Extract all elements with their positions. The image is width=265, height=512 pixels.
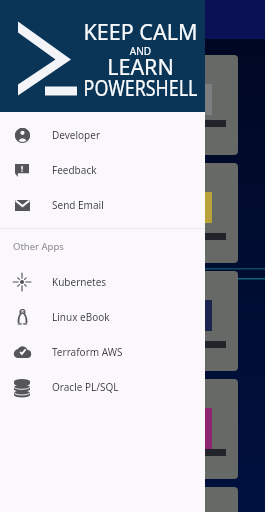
staticText: Linux eBook	[52, 310, 110, 324]
staticText: Send Email	[52, 198, 104, 212]
button[interactable]: Send Email	[0, 187, 205, 222]
staticText: Other Apps	[13, 240, 64, 253]
staticText: Oracle PL/SQL	[52, 380, 119, 394]
button[interactable]: Linux eBook	[0, 299, 205, 334]
button[interactable]	[150, 55, 238, 155]
button[interactable]	[150, 163, 238, 263]
button[interactable]: Kubernetes	[0, 264, 205, 299]
button[interactable]	[150, 487, 238, 512]
staticText: Terraform AWS	[52, 345, 123, 359]
button[interactable]: Terraform AWS	[0, 334, 205, 369]
button[interactable]: Developer	[0, 117, 205, 152]
staticText: Developer	[52, 128, 101, 142]
staticText: POWERSHELL	[55, 73, 225, 102]
staticText: AND	[38, 44, 243, 58]
button[interactable]: Oracle PL/SQL	[0, 369, 205, 404]
staticText: KEEP CALM	[38, 17, 243, 46]
staticText: Feedback	[52, 163, 97, 177]
staticText: LEARN	[38, 52, 243, 81]
button[interactable]	[150, 271, 238, 371]
staticText: Kubernetes	[52, 275, 107, 289]
button[interactable]	[150, 379, 238, 479]
button[interactable]: Feedback	[0, 152, 205, 187]
